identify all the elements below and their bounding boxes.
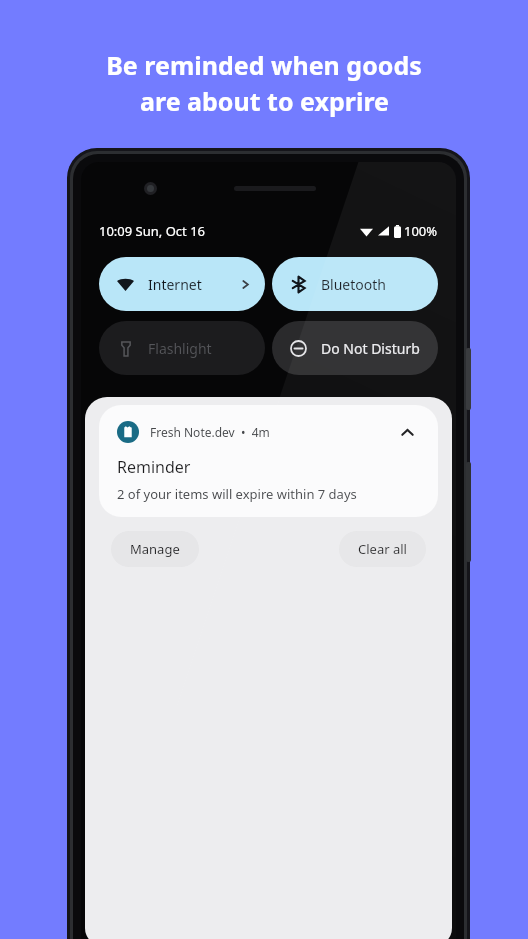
staticText: 2 of your items will expire within 7 day… bbox=[117, 485, 357, 503]
staticText: Reminder bbox=[117, 456, 191, 478]
staticText: are about to exprire bbox=[140, 84, 389, 118]
button[interactable]: Flashlight bbox=[99, 321, 265, 375]
staticText: 10:09 Sun, Oct 16 bbox=[99, 222, 206, 240]
button[interactable]: Internet bbox=[99, 257, 265, 311]
staticText: Bluetooth bbox=[321, 275, 386, 294]
button[interactable]: Clear all bbox=[339, 531, 426, 567]
staticText: Flashlight bbox=[148, 339, 212, 358]
button[interactable]: Fresh Note.dev • 4m bbox=[99, 405, 438, 517]
staticText: Fresh Note.dev • 4m bbox=[150, 424, 270, 440]
button[interactable]: Collapse notification bbox=[394, 419, 420, 445]
staticText: Manage bbox=[130, 540, 180, 558]
button[interactable]: Manage bbox=[111, 531, 199, 567]
staticText: Clear all bbox=[358, 540, 407, 558]
staticText: 100% bbox=[404, 222, 438, 240]
staticText: Be reminded when goods bbox=[106, 48, 422, 82]
staticText: Internet bbox=[148, 275, 202, 294]
button[interactable]: Do Not Disturb bbox=[272, 321, 438, 375]
staticText: Do Not Disturb bbox=[321, 339, 420, 358]
button[interactable]: Bluetooth bbox=[272, 257, 438, 311]
